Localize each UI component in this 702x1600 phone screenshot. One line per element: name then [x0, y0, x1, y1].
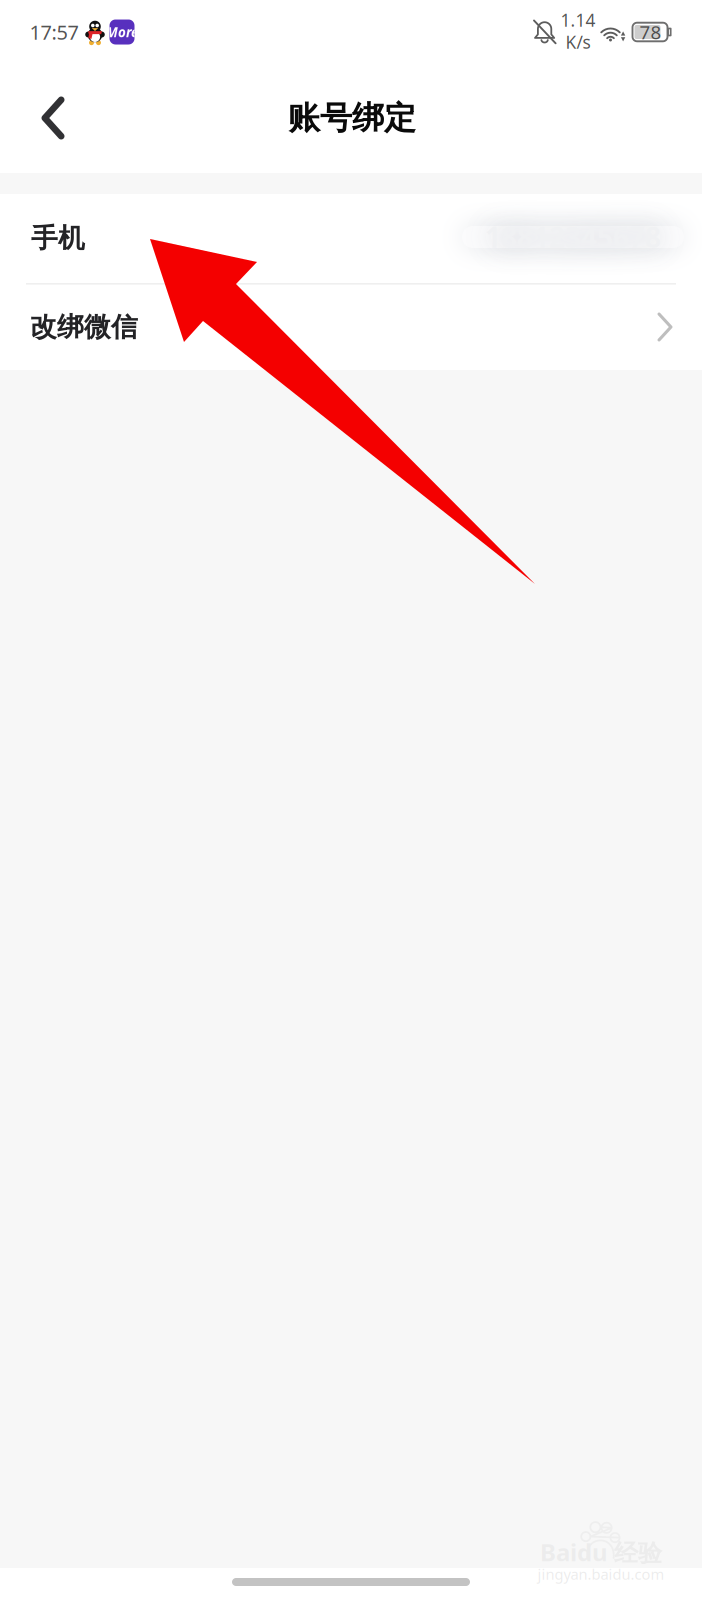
staticText: Baidu 经验 — [540, 1536, 662, 1568]
staticText: 78 — [639, 20, 661, 44]
button[interactable]: 手机 — [0, 194, 702, 283]
staticText: 改绑微信 — [30, 311, 138, 343]
staticText: 账号绑定 — [288, 98, 416, 138]
staticText: 1.14 — [560, 8, 595, 31]
staticText: jingyan.baidu.com — [537, 1564, 664, 1584]
staticText: 17:57 — [29, 19, 78, 45]
staticText: 手机 — [31, 222, 85, 254]
button[interactable]: Back — [17, 82, 89, 154]
staticText: K/s — [565, 30, 590, 53]
button[interactable]: 改绑微信 — [0, 285, 702, 370]
staticText: More — [106, 23, 138, 41]
